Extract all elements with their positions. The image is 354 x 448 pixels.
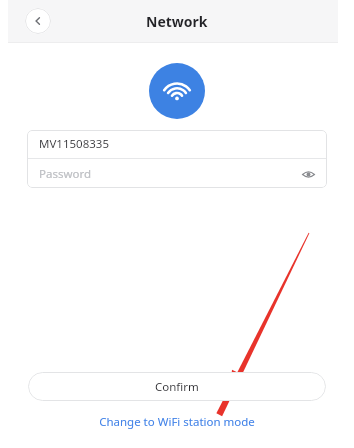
button[interactable]: Password: [27, 159, 327, 188]
staticText: Network: [146, 12, 208, 31]
button[interactable]: Show password: [299, 165, 317, 183]
staticText: Password: [39, 166, 92, 182]
button[interactable]: Confirm: [28, 372, 326, 401]
staticText: Change to WiFi station mode: [99, 414, 255, 430]
staticText: MV11508335: [39, 136, 109, 152]
button[interactable]: Back: [25, 8, 51, 34]
button[interactable]: MV11508335: [27, 130, 327, 158]
button[interactable]: Change to WiFi station mode: [89, 412, 265, 432]
staticText: Confirm: [155, 379, 199, 395]
